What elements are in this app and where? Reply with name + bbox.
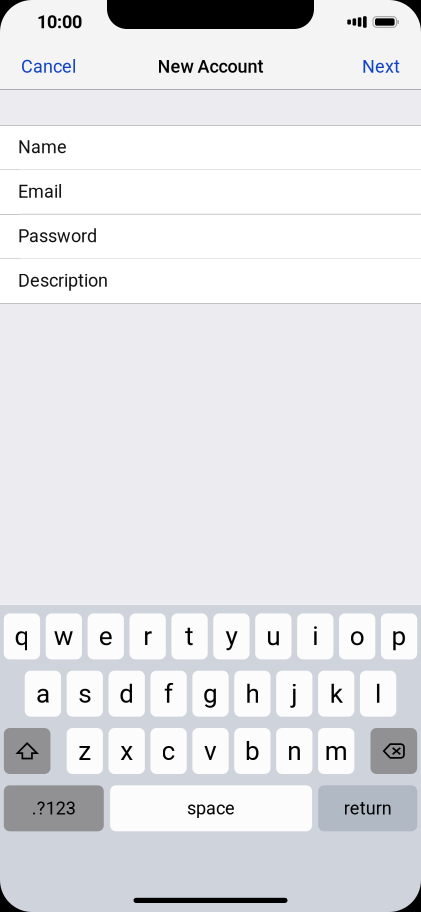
staticText: o [350, 621, 365, 652]
button[interactable]: v [192, 728, 229, 774]
staticText: y [225, 621, 237, 652]
button[interactable]: h [234, 671, 270, 717]
staticText: k [330, 678, 343, 709]
button[interactable]: l [360, 671, 396, 717]
button[interactable]: Delete [371, 728, 417, 774]
button[interactable]: b [234, 728, 270, 774]
staticText: n [287, 736, 301, 766]
button[interactable]: space [110, 785, 312, 831]
staticText: m [325, 736, 348, 766]
staticText: x [120, 736, 133, 766]
staticText: return [344, 798, 392, 819]
button[interactable]: a [25, 671, 61, 717]
button[interactable]: Cancel [0, 44, 88, 89]
button[interactable]: Email [0, 170, 421, 214]
staticText: Next [362, 56, 400, 77]
button[interactable]: y [213, 613, 250, 659]
button[interactable]: return [318, 785, 417, 831]
staticText: q [14, 621, 29, 652]
button[interactable]: c [150, 728, 187, 774]
staticText: e [99, 621, 113, 652]
button[interactable]: s [67, 671, 103, 717]
button[interactable]: i [297, 613, 333, 659]
staticText: j [291, 678, 297, 709]
button[interactable]: w [46, 613, 82, 659]
staticText: l [375, 678, 381, 709]
button[interactable]: Name [0, 125, 421, 170]
button[interactable]: o [339, 613, 375, 659]
staticText: a [36, 678, 50, 709]
button[interactable]: r [129, 613, 166, 659]
button[interactable]: m [318, 728, 354, 774]
staticText: z [78, 736, 91, 766]
staticText: Email [18, 181, 62, 202]
staticText: Description [18, 270, 108, 291]
button[interactable]: j [276, 671, 312, 717]
staticText: b [245, 736, 260, 766]
button[interactable]: f [150, 671, 187, 717]
staticText: f [164, 678, 173, 709]
button[interactable]: d [108, 671, 145, 717]
button[interactable]: Shift [4, 728, 50, 774]
button[interactable]: Next [350, 44, 421, 89]
button[interactable]: k [318, 671, 354, 717]
button[interactable]: p [381, 613, 417, 659]
staticText: Password [18, 226, 97, 247]
staticText: p [391, 621, 406, 652]
staticText: New Account [157, 56, 263, 77]
staticText: g [203, 678, 218, 709]
staticText: t [185, 621, 194, 652]
button[interactable]: Password [0, 214, 421, 259]
staticText: v [204, 736, 217, 766]
staticText: s [78, 678, 91, 709]
button[interactable]: Description [0, 259, 421, 303]
staticText: r [143, 621, 152, 652]
staticText: d [119, 678, 134, 709]
button[interactable]: q [4, 613, 40, 659]
staticText: u [266, 621, 280, 652]
button[interactable]: n [276, 728, 312, 774]
staticText: c [162, 736, 176, 766]
staticText: space [187, 798, 235, 819]
button[interactable]: .?123 [4, 785, 104, 831]
staticText: .?123 [32, 798, 76, 819]
button[interactable]: x [108, 728, 145, 774]
button[interactable]: u [255, 613, 291, 659]
staticText: w [54, 621, 74, 652]
staticText: Name [18, 137, 67, 158]
staticText: h [245, 678, 259, 709]
button[interactable]: g [192, 671, 229, 717]
button[interactable]: e [88, 613, 124, 659]
staticText: i [312, 621, 318, 652]
staticText: 10:00 [37, 11, 82, 33]
staticText: Cancel [21, 56, 76, 77]
button[interactable]: z [67, 728, 103, 774]
button[interactable]: t [171, 613, 208, 659]
